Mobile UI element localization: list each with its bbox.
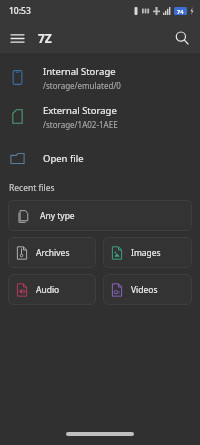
button[interactable]: Open file — [0, 144, 200, 172]
staticText: Images — [131, 247, 161, 259]
button[interactable]: Audio — [8, 274, 96, 305]
staticText: External Storage — [43, 104, 117, 117]
staticText: /storage/emulated/0 — [43, 80, 121, 91]
staticText: /storage/1A02-1AEE — [43, 119, 118, 130]
button[interactable]: Internal Storage — [0, 58, 200, 97]
staticText: Internal Storage — [43, 65, 116, 78]
button[interactable]: Archives — [8, 237, 96, 268]
button[interactable]: External Storage — [0, 97, 200, 136]
staticText: 7Z — [38, 30, 52, 46]
button[interactable]: Videos — [103, 274, 192, 305]
staticText: 74 — [177, 8, 184, 15]
button[interactable]: Search — [169, 25, 195, 51]
button[interactable]: Any type — [8, 200, 192, 231]
staticText: Videos — [131, 284, 158, 296]
staticText: Archives — [36, 247, 70, 259]
staticText: Any type — [40, 210, 75, 222]
button[interactable]: Images — [103, 237, 192, 268]
staticText: Audio — [36, 284, 60, 296]
staticText: 10:53 — [9, 5, 31, 17]
button[interactable]: Menu — [4, 25, 30, 51]
staticText: Recent files — [9, 182, 55, 194]
staticText: Open file — [43, 152, 84, 165]
